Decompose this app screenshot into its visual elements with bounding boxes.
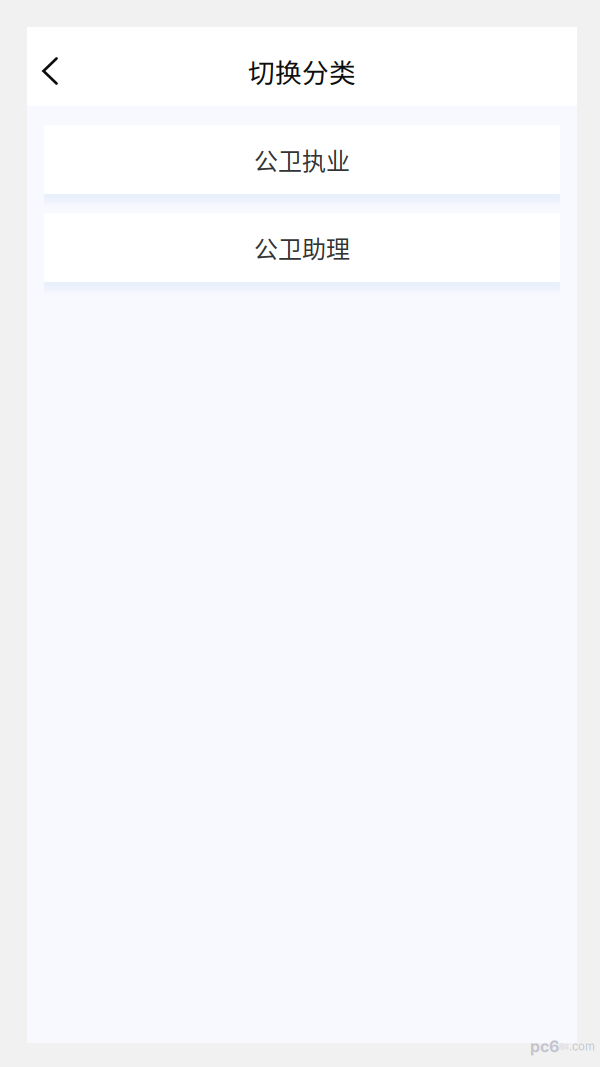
button[interactable]: 公卫执业: [44, 125, 560, 194]
staticText: .com: [569, 1039, 595, 1053]
button[interactable]: 公卫助理: [44, 213, 560, 282]
staticText: 公卫执业: [254, 142, 350, 177]
staticText: pc6: [530, 1037, 559, 1056]
staticText: 公卫助理: [254, 230, 350, 265]
staticText: 切换分类: [248, 52, 356, 90]
staticText: 图库: [559, 1042, 569, 1050]
button[interactable]: Back: [27, 42, 73, 100]
